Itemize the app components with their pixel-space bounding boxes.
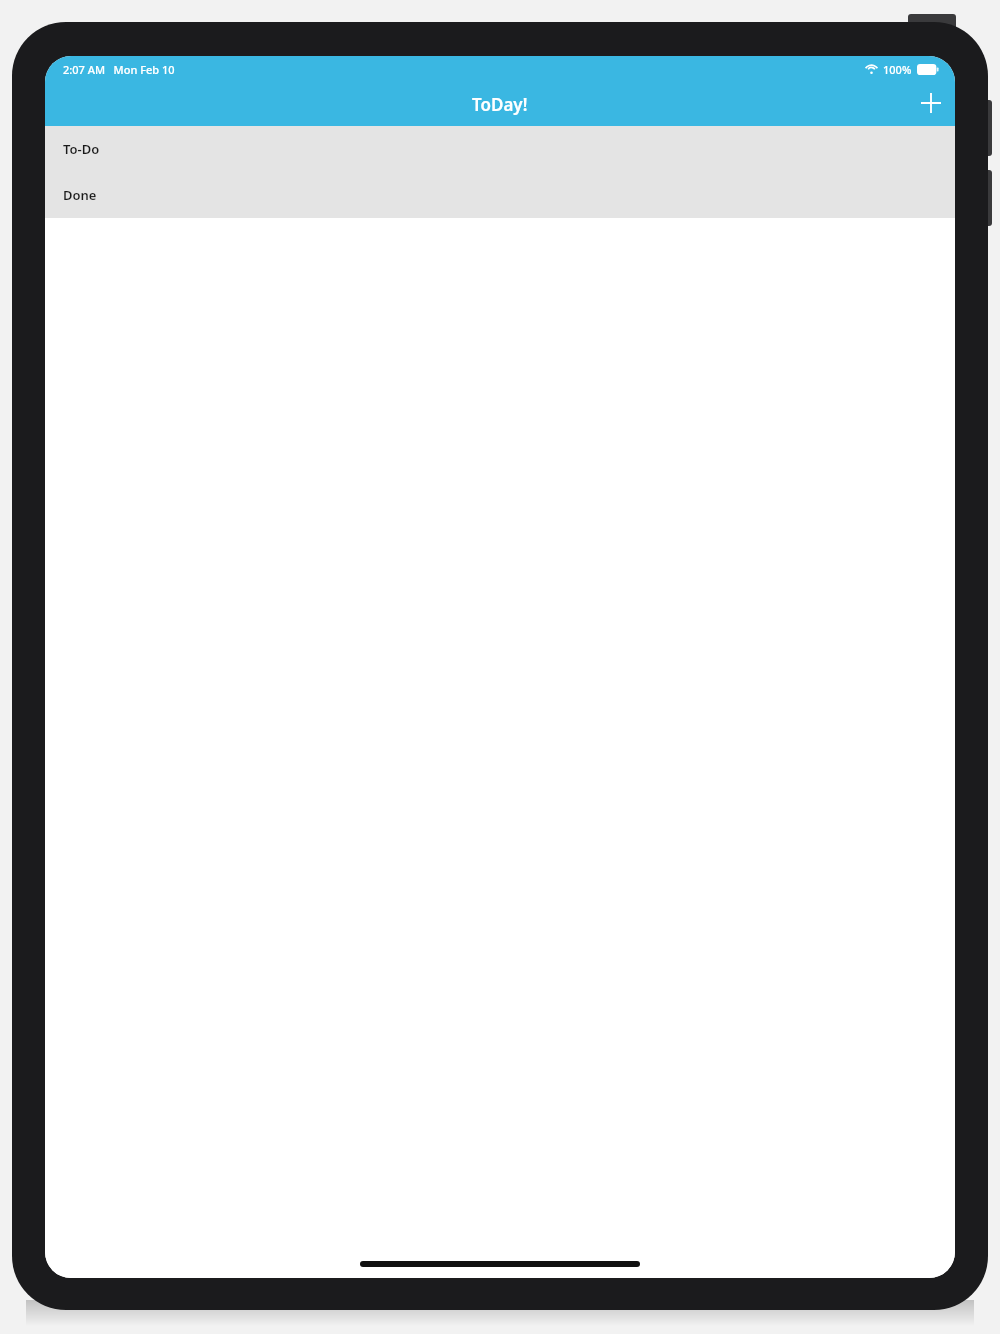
staticText: ToDay! xyxy=(472,93,528,116)
staticText: Done xyxy=(63,186,97,204)
button[interactable]: Done xyxy=(45,172,955,218)
staticText: 2:07 AM Mon Feb 10 xyxy=(63,62,175,77)
button[interactable]: Add task xyxy=(907,79,955,127)
staticText: To-Do xyxy=(63,140,100,158)
button[interactable]: To-Do xyxy=(45,126,955,172)
staticText: 100% xyxy=(883,62,912,77)
